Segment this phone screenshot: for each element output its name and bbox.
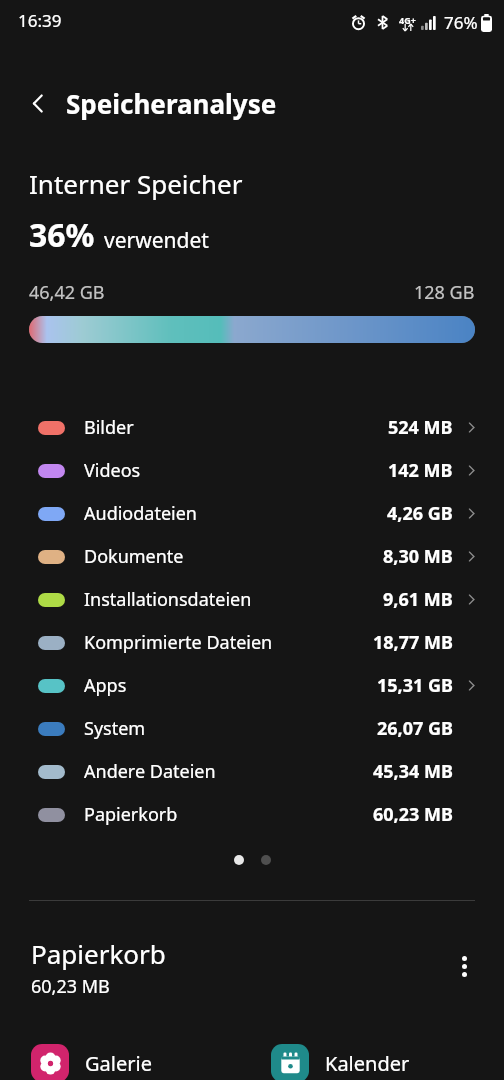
- button[interactable]: Audiodateien: [0, 492, 504, 535]
- button[interactable]: Dokumente: [0, 535, 504, 578]
- staticText: verwendet: [104, 226, 209, 255]
- staticText: 60,23 MB: [373, 802, 453, 827]
- button[interactable]: Seite 2: [261, 855, 271, 865]
- staticText: Dokumente: [84, 544, 184, 569]
- staticText: 9,61 MB: [383, 587, 453, 612]
- button[interactable]: Papierkorb: [0, 793, 504, 836]
- button[interactable]: Galerie: [31, 1044, 152, 1080]
- button[interactable]: Weitere Optionen: [440, 942, 488, 990]
- staticText: 16:39: [18, 9, 62, 32]
- staticText: 76%: [444, 11, 478, 34]
- button[interactable]: Apps: [0, 664, 504, 707]
- staticText: Komprimierte Dateien: [84, 630, 273, 655]
- staticText: Audiodateien: [84, 501, 197, 526]
- staticText: 142 MB: [388, 458, 453, 483]
- button[interactable]: Installationsdateien: [0, 578, 504, 621]
- button[interactable]: Andere Dateien: [0, 750, 504, 793]
- button[interactable]: Kalender: [271, 1044, 410, 1080]
- staticText: Papierkorb: [84, 802, 178, 827]
- staticText: 60,23 MB: [31, 974, 110, 999]
- button[interactable]: System: [0, 707, 504, 750]
- staticText: 128 GB: [414, 280, 475, 305]
- staticText: 46,42 GB: [29, 280, 105, 305]
- button[interactable]: Zurück: [13, 78, 63, 128]
- staticText: Installationsdateien: [84, 587, 252, 612]
- staticText: 45,34 MB: [373, 759, 453, 784]
- staticText: Bilder: [84, 415, 134, 440]
- staticText: 524 MB: [388, 415, 453, 440]
- staticText: 4,26 GB: [387, 501, 453, 526]
- staticText: Speicheranalyse: [66, 86, 277, 121]
- staticText: Videos: [84, 458, 141, 483]
- button[interactable]: Bilder: [0, 406, 504, 449]
- staticText: Kalender: [325, 1050, 410, 1077]
- staticText: 36%: [29, 213, 95, 257]
- staticText: System: [84, 716, 146, 741]
- staticText: Galerie: [85, 1050, 152, 1077]
- staticText: Andere Dateien: [84, 759, 216, 784]
- staticText: 8,30 MB: [383, 544, 453, 569]
- button[interactable]: Seite 1: [234, 855, 244, 865]
- staticText: Interner Speicher: [29, 166, 243, 201]
- button[interactable]: Komprimierte Dateien: [0, 621, 504, 664]
- staticText: 4G+: [399, 14, 416, 26]
- staticText: 15,31 GB: [377, 673, 453, 698]
- button[interactable]: Videos: [0, 449, 504, 492]
- staticText: 26,07 GB: [377, 716, 453, 741]
- staticText: 18,77 MB: [373, 630, 453, 655]
- staticText: Papierkorb: [31, 936, 166, 971]
- staticText: Apps: [84, 673, 127, 698]
